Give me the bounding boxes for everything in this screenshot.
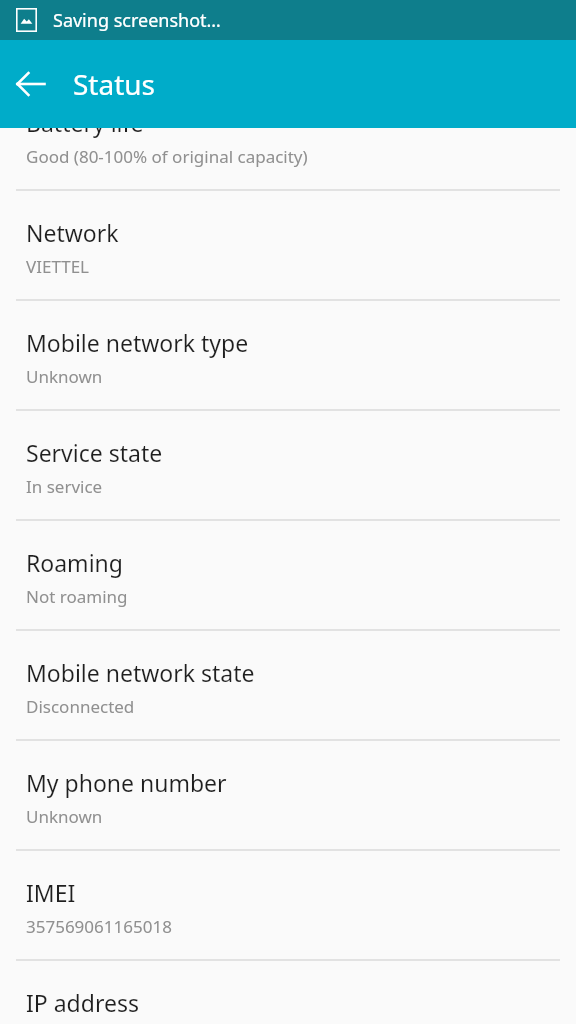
staticText: IP address <box>26 987 139 1018</box>
button[interactable]: Navigate up <box>0 40 62 128</box>
staticText: Mobile network type <box>26 327 249 358</box>
staticText: In service <box>26 475 103 498</box>
staticText: Mobile network state <box>26 657 255 688</box>
button[interactable]: Mobile network state <box>0 631 576 741</box>
staticText: Battery life <box>26 107 144 138</box>
button[interactable]: My phone number <box>0 741 576 851</box>
button[interactable]: IP address <box>0 961 576 1024</box>
button[interactable]: Network <box>0 191 576 301</box>
staticText: Unknown <box>26 365 103 388</box>
button[interactable]: Service state <box>0 411 576 521</box>
staticText: 357569061165018 <box>26 915 172 938</box>
button[interactable]: Roaming <box>0 521 576 631</box>
staticText: Good (80-100% of original capacity) <box>26 145 308 168</box>
staticText: Network <box>26 217 119 248</box>
button[interactable]: Mobile network type <box>0 301 576 411</box>
staticText: Unknown <box>26 805 103 828</box>
staticText: Saving screenshot… <box>53 8 221 33</box>
staticText: My phone number <box>26 767 227 798</box>
staticText: VIETTEL <box>26 255 90 278</box>
staticText: IMEI <box>26 877 76 908</box>
other: Screenshot notification <box>16 8 37 32</box>
staticText: Disconnected <box>26 695 135 718</box>
staticText: Not roaming <box>26 585 128 608</box>
staticText: Status <box>73 65 156 103</box>
button[interactable]: IMEI <box>0 851 576 961</box>
button[interactable]: Battery life <box>0 81 576 191</box>
staticText: Service state <box>26 437 163 468</box>
staticText: Roaming <box>26 547 123 578</box>
